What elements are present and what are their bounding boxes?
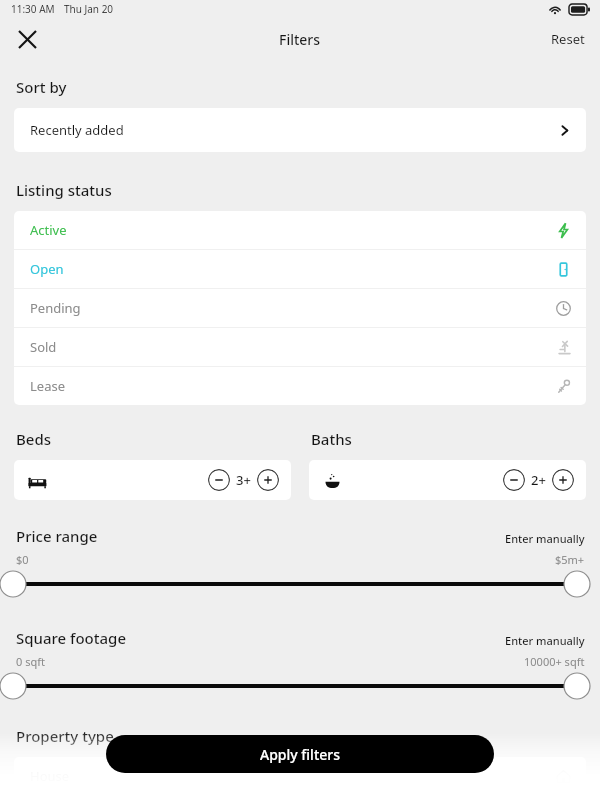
staticText: Reset: [551, 30, 585, 48]
staticText: 11:30 AM: [11, 2, 55, 16]
staticText: $0: [16, 552, 29, 567]
button[interactable]: Apply filters: [106, 735, 494, 773]
staticText: Baths: [311, 429, 352, 449]
staticText: Pending: [30, 299, 81, 317]
button[interactable]: Open: [14, 250, 586, 288]
button[interactable]: Enter manually: [505, 531, 585, 546]
button[interactable]: Recently added: [14, 108, 586, 152]
staticText: Price range: [16, 526, 98, 546]
staticText: 0 sqft: [16, 654, 45, 669]
button[interactable]: Decrease: [208, 469, 230, 491]
button[interactable]: Decrease: [503, 469, 525, 491]
button[interactable]: Increase: [552, 469, 574, 491]
staticText: Sold: [30, 338, 57, 356]
staticText: 10000+ sqft: [524, 654, 585, 669]
button[interactable]: Increase: [257, 469, 279, 491]
button[interactable]: Close: [8, 20, 46, 58]
button[interactable]: Reset: [551, 30, 585, 48]
staticText: Open: [30, 260, 64, 278]
staticText: Apply filters: [260, 745, 341, 764]
staticText: Beds: [16, 429, 52, 449]
staticText: Enter manually: [505, 633, 585, 648]
staticText: Square footage: [16, 628, 127, 648]
staticText: 2+: [531, 471, 546, 489]
staticText: Active: [30, 221, 67, 239]
staticText: Enter manually: [505, 531, 585, 546]
staticText: $5m+: [555, 552, 585, 567]
button[interactable]: Enter manually: [505, 633, 585, 648]
button[interactable]: House: [14, 757, 586, 795]
staticText: Listing status: [16, 180, 112, 200]
staticText: Filters: [279, 30, 321, 49]
staticText: Recently added: [30, 121, 124, 139]
button[interactable]: Pending: [14, 289, 586, 327]
button[interactable]: Sold: [14, 328, 586, 366]
staticText: Property type: [16, 726, 114, 746]
staticText: Thu Jan 20: [64, 2, 114, 16]
button[interactable]: Active: [14, 211, 586, 249]
staticText: 3+: [236, 471, 251, 489]
staticText: Lease: [30, 377, 65, 395]
button[interactable]: Lease: [14, 367, 586, 405]
staticText: Sort by: [16, 77, 67, 97]
